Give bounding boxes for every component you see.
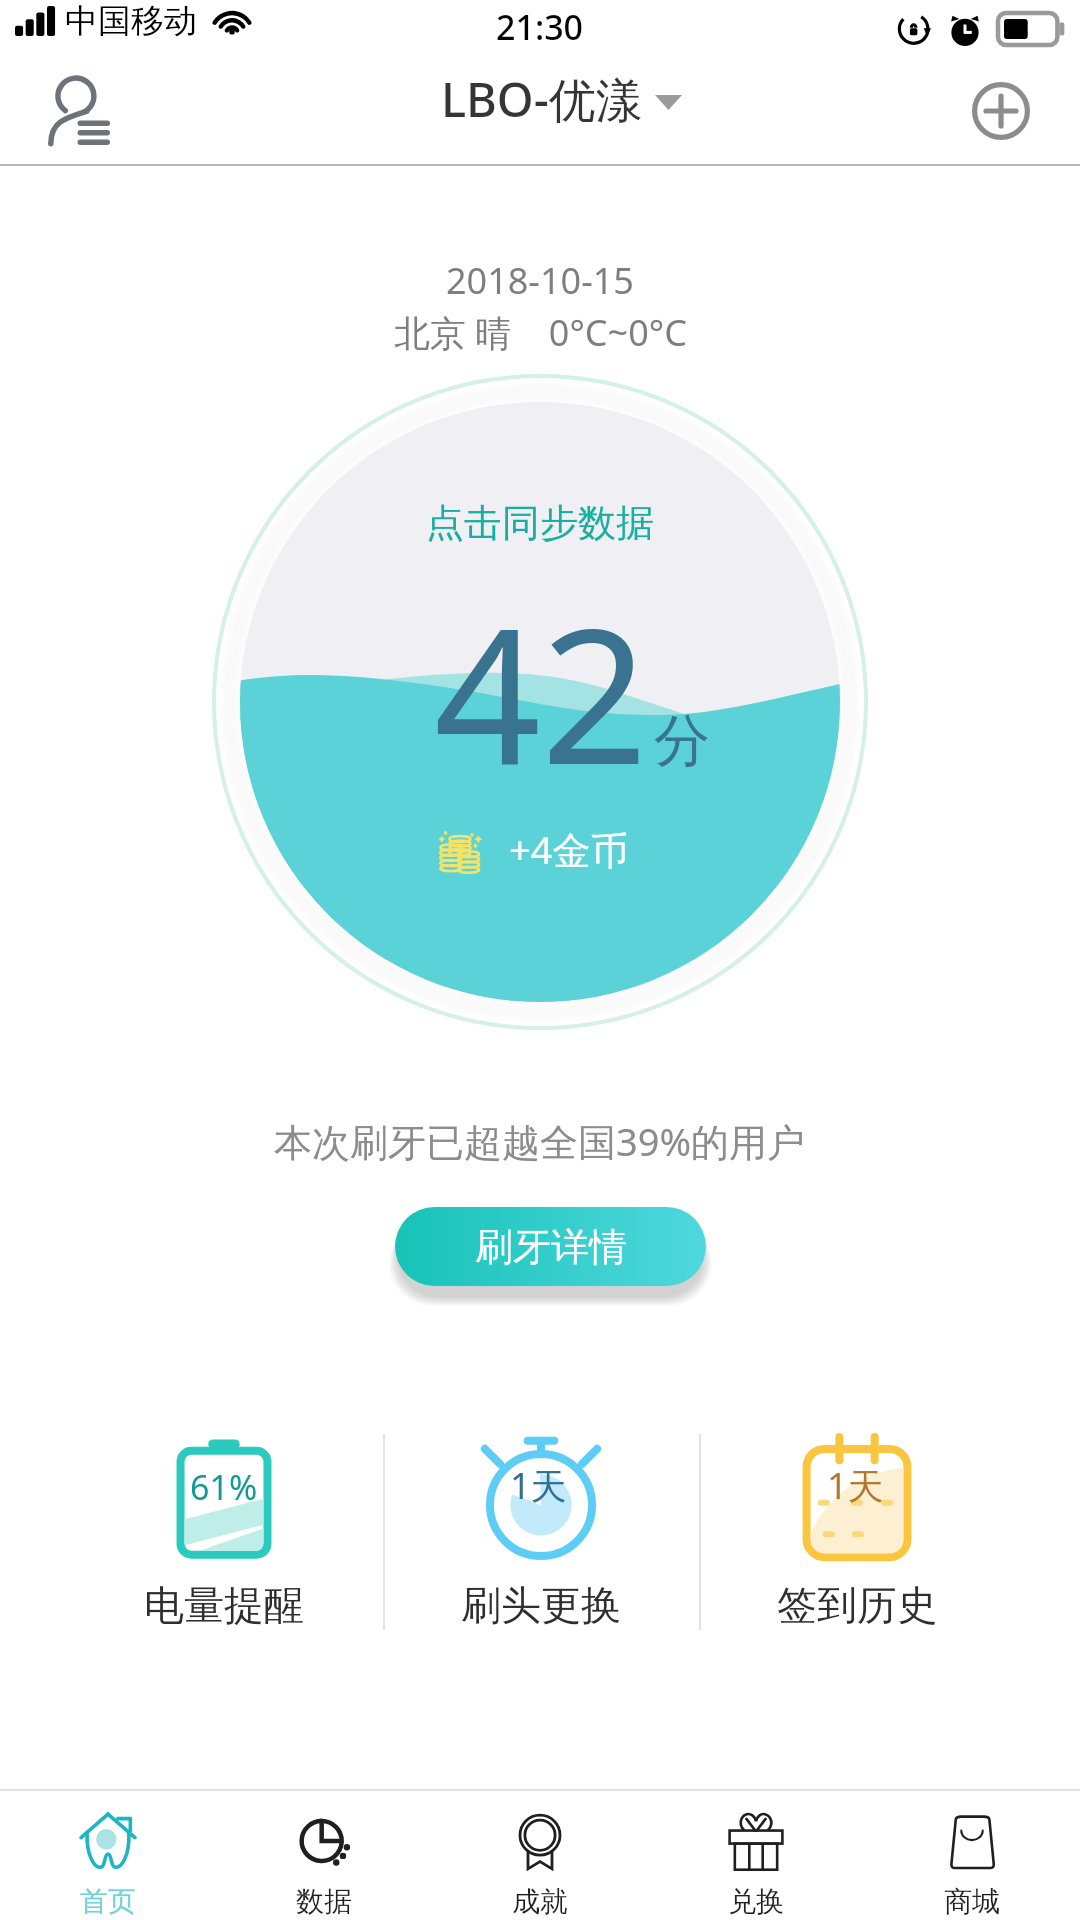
staticText: 本次刷牙已超越全国39%的用户 — [274, 1115, 806, 1167]
staticText: LBO-优漾 — [441, 67, 643, 131]
button[interactable]: Add device — [955, 65, 1047, 157]
staticText: 成就 — [512, 1884, 568, 1919]
button[interactable]: 兑换 — [648, 1791, 864, 1919]
staticText: 中国移动 — [65, 0, 197, 42]
button[interactable]: 刷牙详情 — [395, 1207, 706, 1286]
staticText: 数据 — [296, 1884, 352, 1919]
staticText: 北京 晴 0°C~0°C — [394, 308, 687, 357]
staticText: 2018-10-15 — [446, 256, 634, 305]
staticText: 首页 — [80, 1884, 136, 1919]
staticText: +4金币 — [509, 823, 629, 875]
staticText: 21:30 — [496, 4, 584, 50]
staticText: 兑换 — [728, 1884, 784, 1919]
staticText: 分 — [654, 706, 710, 777]
staticText: 电量提醒 — [144, 1580, 304, 1630]
button[interactable]: 商城 — [864, 1791, 1080, 1919]
button[interactable]: 首页 — [0, 1791, 216, 1919]
button[interactable]: 1天 — [383, 1420, 699, 1650]
button[interactable]: 点击同步数据 — [188, 490, 892, 556]
staticText: 点击同步数据 — [426, 499, 654, 547]
button[interactable]: Members — [23, 58, 135, 164]
staticText: 刷牙详情 — [475, 1223, 627, 1271]
staticText: 1天 — [510, 1461, 567, 1510]
button[interactable]: 61% — [66, 1420, 382, 1650]
staticText: 签到历史 — [777, 1580, 937, 1630]
staticText: 42 — [434, 564, 648, 819]
button[interactable]: 成就 — [432, 1791, 648, 1919]
button[interactable]: 数据 — [216, 1791, 432, 1919]
staticText: 61% — [190, 1464, 258, 1510]
staticText: 商城 — [944, 1884, 1000, 1919]
staticText: 刷头更换 — [461, 1580, 621, 1630]
button[interactable]: 1天 — [699, 1420, 1015, 1650]
staticText: 1天 — [827, 1461, 884, 1510]
